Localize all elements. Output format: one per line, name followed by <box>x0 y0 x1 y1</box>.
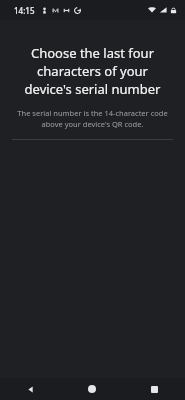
staticText: 14:15 <box>14 5 35 16</box>
button[interactable]: Home <box>61 378 123 400</box>
button[interactable]: Back <box>0 378 61 400</box>
button[interactable]: Recent apps <box>123 378 185 400</box>
staticText: Choose the last four characters of your … <box>14 44 171 98</box>
staticText: The serial number is the 14-character co… <box>10 108 175 129</box>
